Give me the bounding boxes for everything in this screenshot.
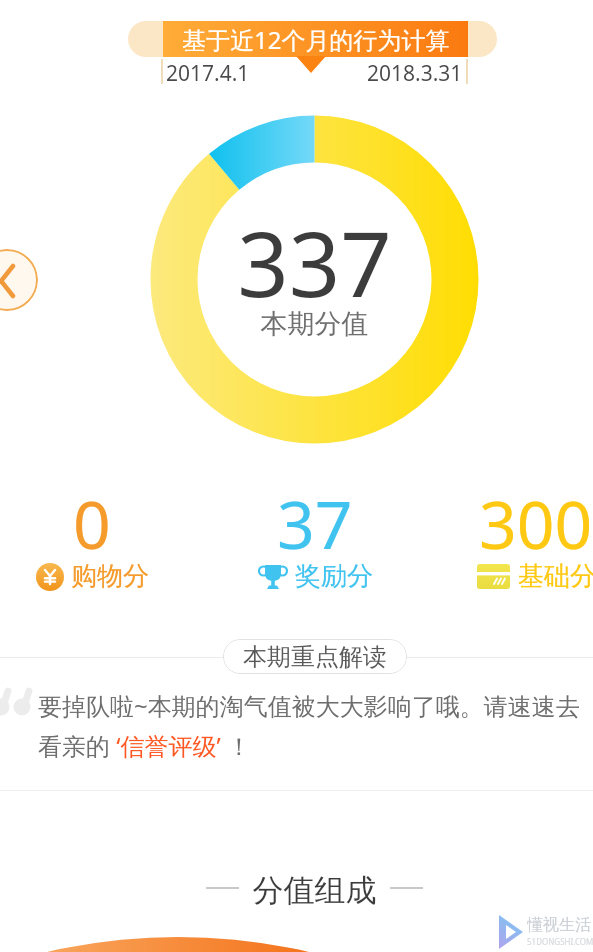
staticText: 要掉队啦~本期的淘气值被大大影响了哦。请速速去 xyxy=(38,689,580,722)
staticText: 37 xyxy=(277,478,353,568)
staticText: 51DONGSHI.COM xyxy=(527,936,593,947)
staticText: 300 xyxy=(479,478,593,568)
button[interactable]: 基于近12个月的行为计算 xyxy=(128,21,497,57)
staticText: 本期分值 xyxy=(18,307,593,341)
staticText: 0 xyxy=(73,478,111,568)
staticText: 2018.3.31 xyxy=(367,59,463,85)
button[interactable]: 0 xyxy=(0,478,202,598)
staticText: 购物分 xyxy=(71,560,149,593)
button[interactable] xyxy=(0,249,38,311)
staticText: 分值组成 xyxy=(18,871,593,910)
staticText: 看亲的 ‘信誉评级’ ！ xyxy=(38,729,251,762)
staticText: 本期重点解读 xyxy=(243,642,387,672)
staticText: 基础分 xyxy=(518,560,593,593)
button[interactable]: 本期重点解读 xyxy=(223,639,407,674)
button[interactable]: 37 xyxy=(205,478,425,598)
staticText: 懂视生活 xyxy=(527,915,591,935)
button[interactable]: 300 xyxy=(426,478,593,598)
staticText: 奖励分 xyxy=(295,560,373,593)
staticText: 2017.4.1 xyxy=(166,59,250,85)
staticText: 基于近12个月的行为计算 xyxy=(182,23,450,56)
staticText: 337 xyxy=(18,201,593,324)
